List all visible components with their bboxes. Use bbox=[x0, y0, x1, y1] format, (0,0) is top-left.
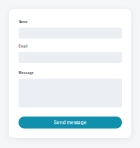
staticText: Message bbox=[18, 71, 33, 75]
staticText: Email bbox=[18, 44, 27, 48]
button[interactable]: Send message bbox=[18, 116, 122, 128]
staticText: Send message bbox=[54, 120, 87, 125]
staticText: Name bbox=[18, 20, 27, 24]
